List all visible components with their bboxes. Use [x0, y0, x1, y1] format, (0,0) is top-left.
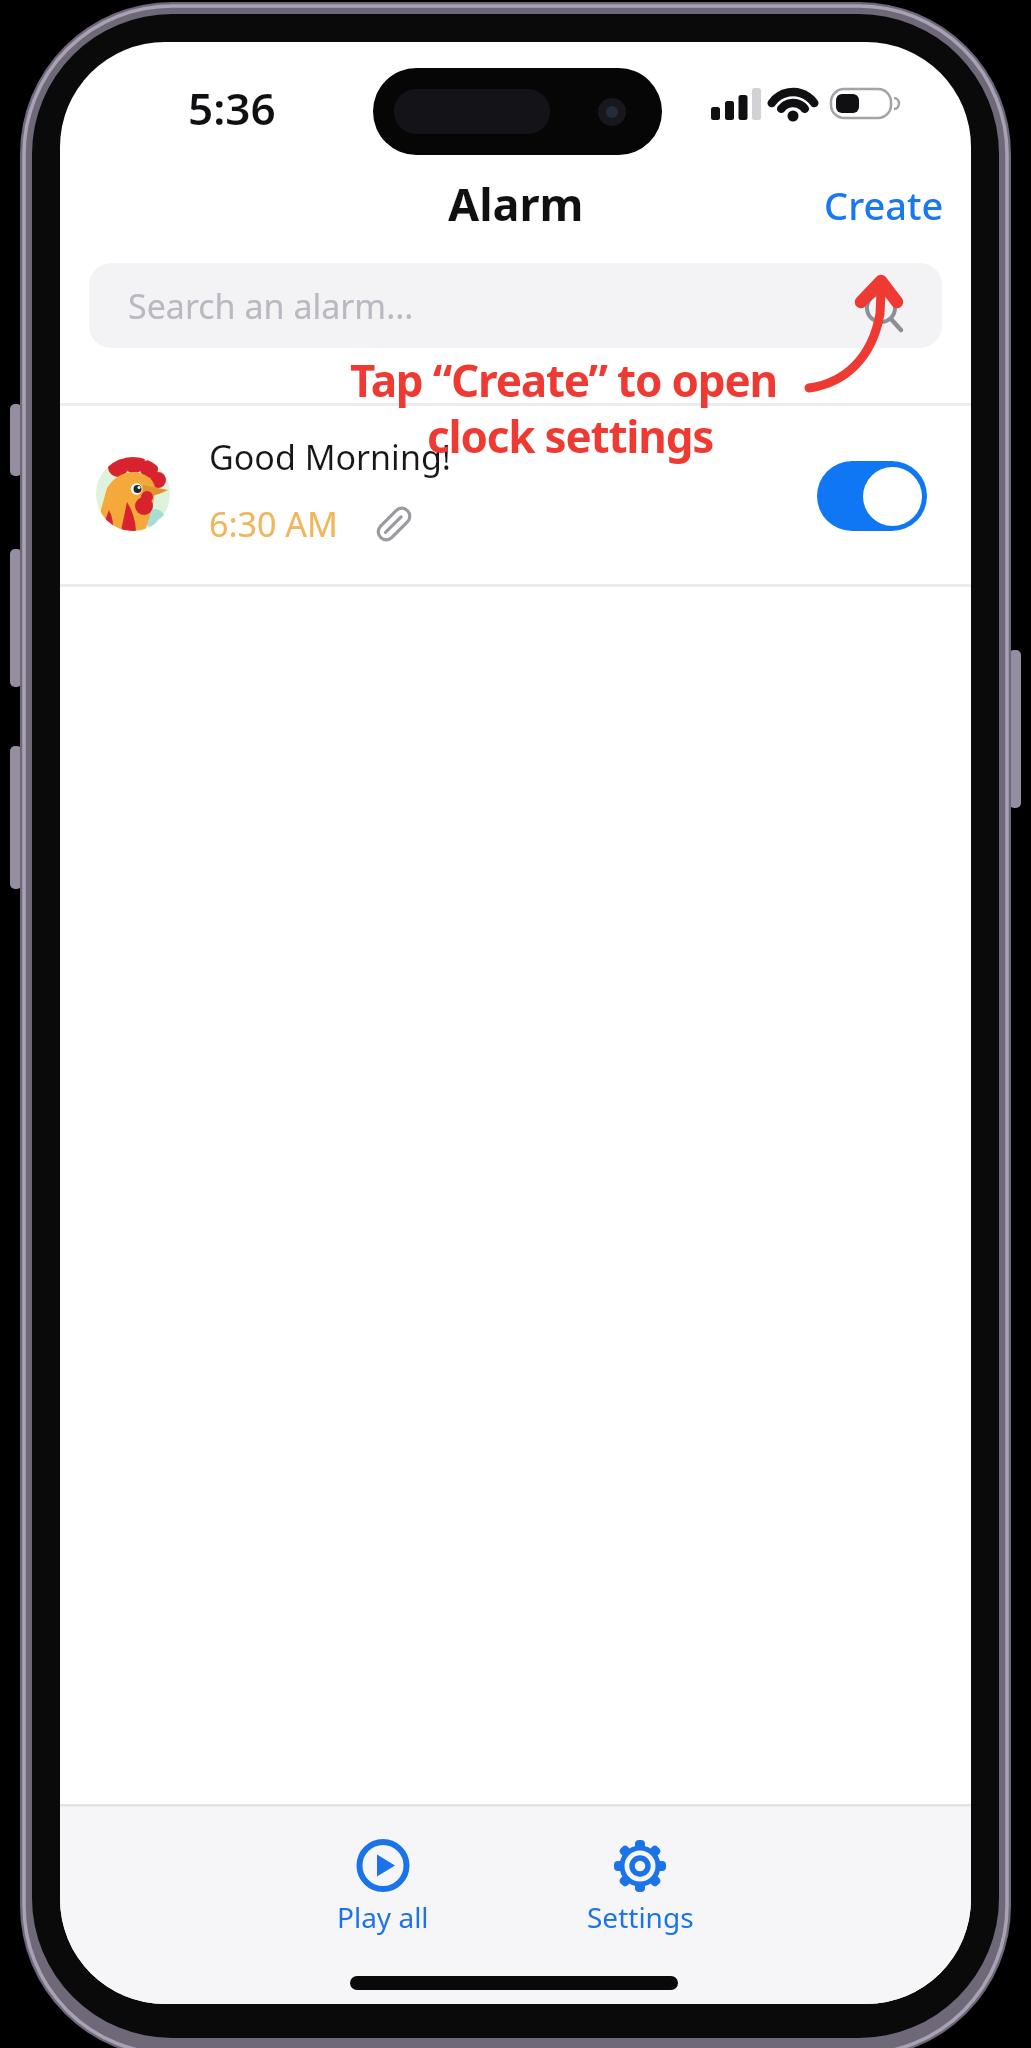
- staticText: Good Morning!: [209, 434, 451, 480]
- button[interactable]: Good Morning!: [60, 406, 971, 584]
- staticText: 6:30 AM: [209, 501, 338, 547]
- staticText: Search an alarm...: [128, 283, 414, 329]
- staticText: Settings: [587, 1898, 694, 1936]
- staticText: clock settings: [427, 406, 714, 466]
- button[interactable]: [817, 461, 927, 531]
- button[interactable]: Search an alarm...: [89, 263, 942, 348]
- button[interactable]: Settings: [570, 1832, 710, 1952]
- button[interactable]: Create: [824, 179, 944, 231]
- button[interactable]: Play all: [313, 1832, 453, 1952]
- staticText: Create: [824, 179, 944, 231]
- staticText: Tap “Create” to open: [350, 350, 777, 410]
- staticText: 5:36: [188, 78, 276, 138]
- staticText: Play all: [337, 1898, 429, 1936]
- staticText: Alarm: [448, 173, 584, 234]
